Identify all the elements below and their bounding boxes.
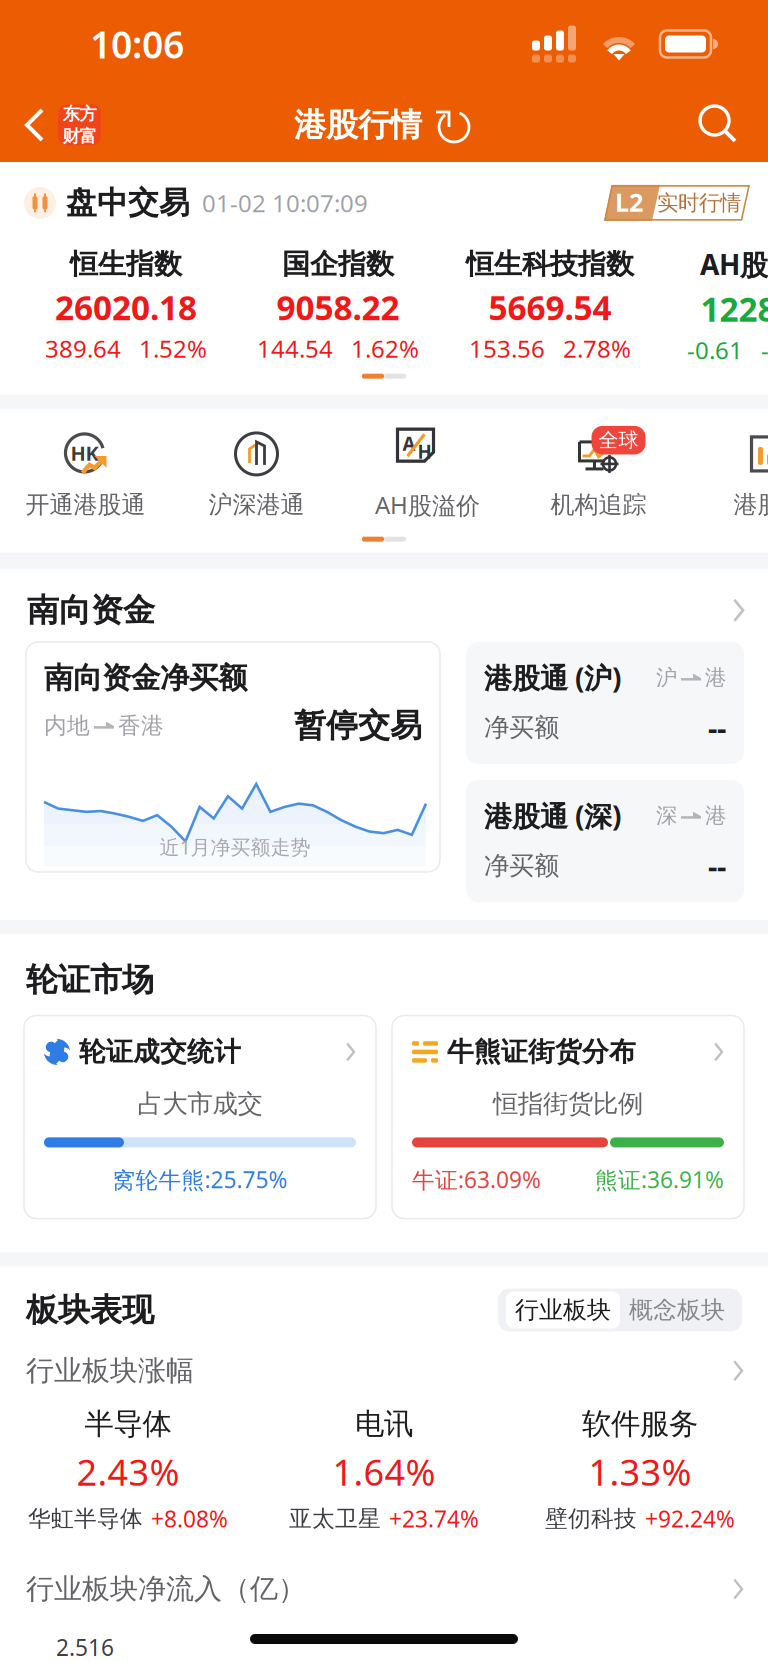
staticText: 电讯: [355, 1406, 413, 1442]
staticText: 近1月净买额走势: [159, 833, 310, 860]
button[interactable]: A: [342, 431, 513, 521]
staticText: HK: [70, 440, 98, 466]
button[interactable]: Back: [0, 88, 101, 162]
staticText: 净买额: [484, 850, 559, 881]
staticText: 概念板块: [629, 1295, 725, 1325]
staticText: 港股行情: [294, 105, 422, 145]
staticText: 板块表现: [26, 1290, 154, 1330]
staticText: 盘中交易: [66, 184, 190, 222]
staticText: 沪深港通: [208, 490, 304, 519]
staticText: 暂停交易: [294, 706, 422, 745]
staticText: 恒指街货比例: [493, 1088, 643, 1119]
staticText: 港股通 (深): [484, 797, 621, 834]
button[interactable]: 行业板块涨幅: [0, 1331, 768, 1388]
staticText: 东方: [62, 103, 96, 124]
staticText: 华虹半导体: [28, 1505, 143, 1533]
staticText: 1.64%: [332, 1448, 435, 1496]
staticText: 行业板块净流入（亿）: [26, 1572, 306, 1606]
staticText: 1.62%: [351, 333, 419, 364]
staticText: 南向资金净买额: [44, 660, 247, 696]
staticText: 熊证:36.91%: [595, 1164, 724, 1194]
button[interactable]: 行业板块: [506, 1291, 620, 1328]
staticText: H: [417, 439, 431, 464]
staticText: 牛熊证街货分布: [447, 1035, 636, 1068]
staticText: 深: [656, 803, 677, 829]
staticText: 净买额: [484, 712, 559, 743]
staticText: AH股溢价: [700, 245, 768, 283]
staticText: +8.08%: [151, 1504, 228, 1534]
staticText: 2.516: [56, 1632, 114, 1662]
staticText: 沪: [656, 664, 677, 691]
staticText: 恒生科技指数: [466, 247, 634, 281]
staticText: A: [402, 431, 415, 456]
staticText: 10:06: [90, 19, 184, 69]
button[interactable]: 全球: [513, 432, 684, 519]
staticText: 机构追踪: [550, 490, 646, 519]
staticText: 香港: [118, 712, 164, 739]
staticText: 窝轮牛熊:25.75%: [112, 1164, 287, 1194]
staticText: 港: [705, 664, 726, 691]
staticText: 1.33%: [588, 1448, 691, 1496]
staticText: 港股通: [733, 490, 768, 519]
staticText: 389.64: [45, 333, 121, 364]
button[interactable]: HK: [0, 432, 171, 519]
staticText: 153.56: [469, 333, 545, 364]
staticText: 144.54: [257, 333, 333, 364]
staticText: 01-02 10:07:09: [202, 187, 368, 219]
staticText: 9058.22: [276, 285, 399, 330]
staticText: 轮证市场: [26, 960, 154, 999]
button[interactable]: 行业板块净流入（亿）: [0, 1534, 768, 1606]
staticText: 5669.54: [488, 285, 611, 330]
staticText: L2: [615, 185, 643, 219]
staticText: 2.78%: [563, 333, 631, 364]
staticText: 行业板块: [515, 1295, 611, 1325]
button[interactable]: 南向资金净买额: [26, 642, 440, 872]
staticText: 港股通 (沪): [484, 659, 621, 696]
button[interactable]: 港股通 (沪): [466, 642, 744, 764]
staticText: 恒生指数: [70, 247, 182, 281]
button[interactable]: 沪深港通: [171, 432, 342, 519]
staticText: 软件服务: [582, 1406, 698, 1442]
staticText: 开通港股通: [25, 490, 145, 519]
staticText: 南向资金: [27, 591, 155, 630]
staticText: 实时行情: [657, 190, 741, 216]
staticText: 轮证成交统计: [79, 1035, 241, 1068]
staticText: 壁仞科技: [545, 1505, 637, 1533]
button[interactable]: 概念板块: [620, 1291, 734, 1328]
button[interactable]: 轮证成交统计: [24, 1015, 376, 1218]
staticText: 牛证:63.09%: [412, 1164, 541, 1194]
staticText: +92.24%: [645, 1504, 735, 1534]
staticText: +23.74%: [389, 1504, 479, 1534]
staticText: 26020.18: [55, 285, 197, 330]
staticText: -0.61: [687, 334, 743, 366]
staticText: 1228.48: [700, 287, 768, 331]
button[interactable]: 港股通: [684, 432, 768, 519]
staticText: AH股溢价: [375, 489, 480, 521]
staticText: --: [708, 708, 726, 747]
staticText: 2.43%: [76, 1448, 179, 1496]
staticText: 占大市成交: [137, 1088, 262, 1119]
staticText: 财富: [62, 125, 96, 147]
staticText: 港: [705, 803, 726, 829]
button[interactable]: Search: [700, 88, 768, 162]
staticText: 内地: [44, 712, 90, 739]
staticText: 半导体: [84, 1406, 171, 1442]
staticText: 1.52%: [139, 333, 207, 364]
staticText: 亚太卫星: [289, 1505, 381, 1533]
staticText: 国企指数: [282, 247, 394, 281]
button[interactable]: 牛熊证街货分布: [392, 1015, 744, 1218]
staticText: -0.05%: [761, 334, 768, 366]
button[interactable]: 南向资金: [1, 569, 768, 642]
staticText: 行业板块涨幅: [26, 1353, 194, 1388]
button[interactable]: 港股通 (深): [466, 780, 744, 902]
staticText: 全球: [598, 428, 638, 452]
staticText: --: [708, 846, 726, 885]
